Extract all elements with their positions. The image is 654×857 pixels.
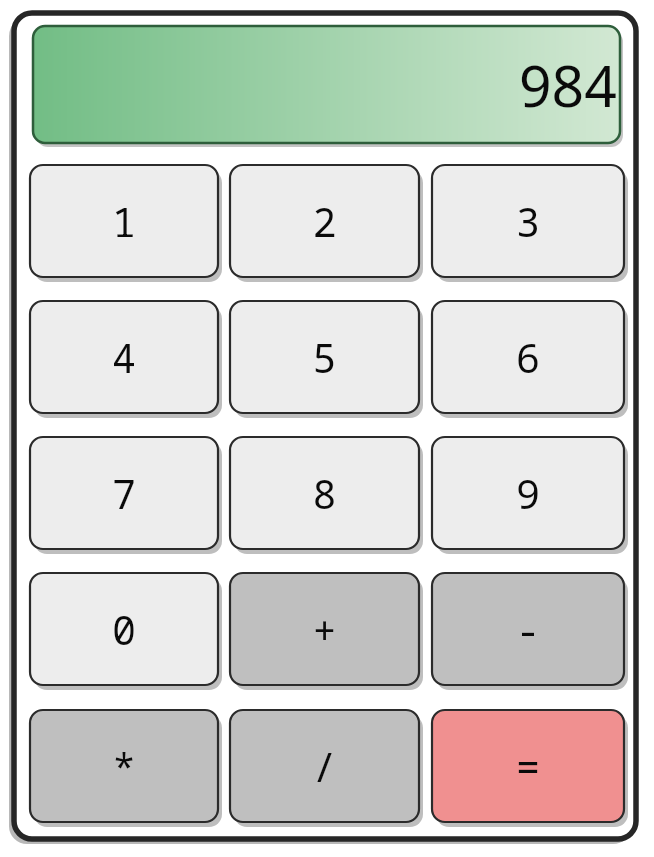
button[interactable]: Plus [230, 573, 419, 685]
button[interactable]: 5 [230, 301, 419, 413]
button[interactable]: Divide [230, 710, 419, 822]
button[interactable]: 6 [432, 301, 624, 413]
button[interactable]: Display 984 [33, 26, 620, 143]
button[interactable]: 0 [30, 573, 218, 685]
button[interactable]: Minus [432, 573, 624, 685]
button[interactable]: 2 [230, 165, 419, 277]
button[interactable]: 7 [30, 437, 218, 549]
button[interactable]: 4 [30, 301, 218, 413]
button[interactable]: Multiply [30, 710, 218, 822]
button[interactable]: 1 [30, 165, 218, 277]
button[interactable]: 3 [432, 165, 624, 277]
button[interactable]: 9 [432, 437, 624, 549]
button[interactable]: 8 [230, 437, 419, 549]
button[interactable]: Equals [432, 710, 624, 822]
